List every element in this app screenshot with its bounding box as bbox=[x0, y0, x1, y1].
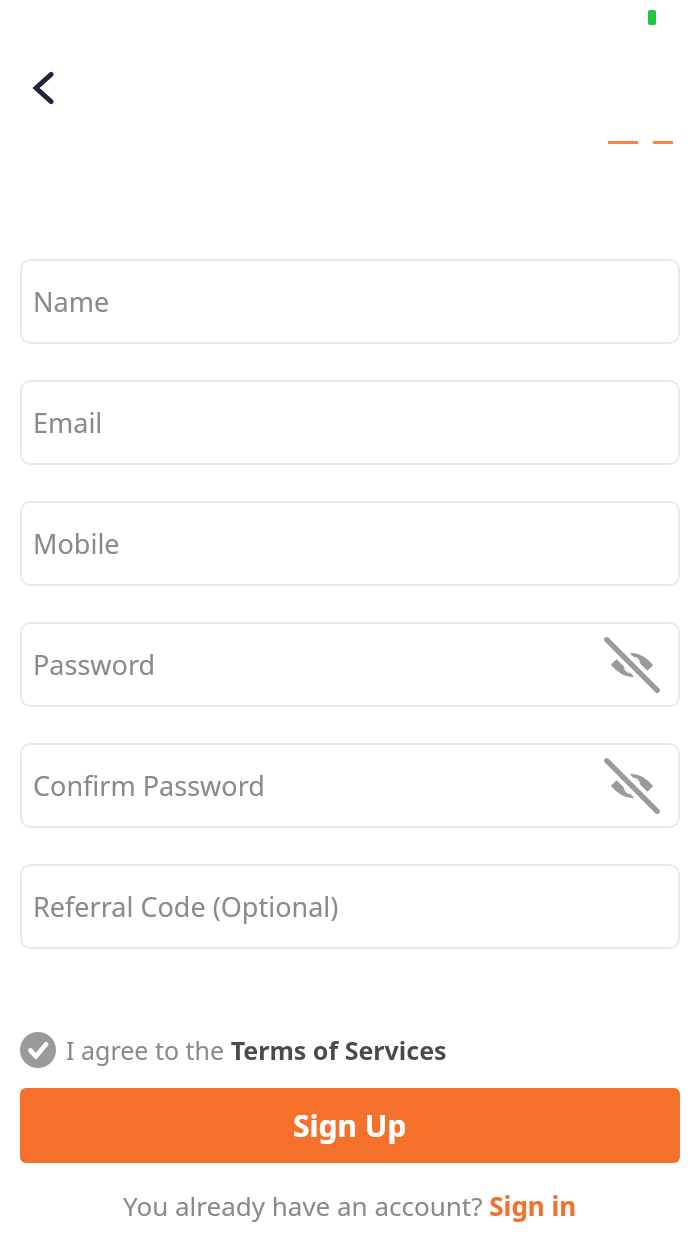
staticText: Confirm Password bbox=[33, 767, 265, 804]
button[interactable]: I agree to the Terms of Services bbox=[20, 1030, 447, 1070]
staticText: Sign Up bbox=[293, 1105, 407, 1146]
button[interactable]: Confirm Password bbox=[20, 743, 680, 828]
button[interactable]: Email bbox=[20, 380, 680, 465]
button[interactable]: Name bbox=[20, 259, 680, 344]
button[interactable]: Password bbox=[20, 622, 680, 707]
button[interactable]: Sign Up bbox=[20, 1088, 680, 1163]
staticText: Email bbox=[33, 404, 103, 441]
staticText: Password bbox=[33, 646, 156, 683]
staticText: You already have an account? Sign in bbox=[123, 1188, 577, 1223]
button[interactable]: Mobile bbox=[20, 501, 680, 586]
button[interactable]: Referral Code (Optional) bbox=[20, 864, 680, 949]
button[interactable]: Show password bbox=[607, 761, 657, 811]
staticText: I agree to the Terms of Services bbox=[66, 1033, 447, 1067]
staticText: Name bbox=[33, 283, 110, 320]
button[interactable]: Show password bbox=[607, 640, 657, 690]
staticText: Referral Code (Optional) bbox=[33, 888, 339, 925]
button[interactable]: Back bbox=[14, 58, 74, 118]
button[interactable]: You already have an account? Sign in bbox=[0, 1182, 700, 1228]
staticText: Mobile bbox=[33, 525, 120, 562]
